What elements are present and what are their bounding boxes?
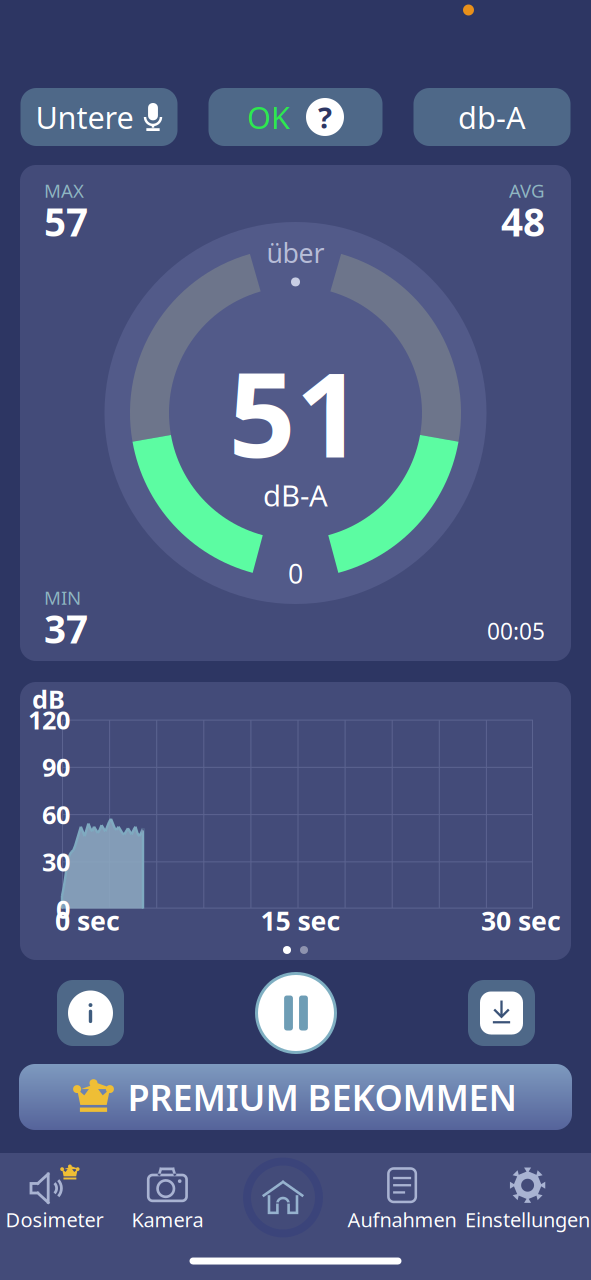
staticText: Kamera (131, 1206, 203, 1233)
button[interactable]: OK (208, 88, 382, 146)
staticText: 48 (501, 196, 545, 247)
button[interactable]: Aufnahmen (342, 1158, 462, 1236)
staticText: 90 (42, 750, 70, 784)
staticText: 60 (42, 797, 70, 831)
button[interactable]: Info (57, 980, 124, 1046)
staticText: 51 (228, 334, 362, 490)
staticText: db-A (458, 97, 526, 137)
staticText: MIN (44, 585, 81, 610)
staticText: 37 (44, 603, 88, 654)
staticText: dB-A (263, 475, 328, 514)
button[interactable]: Pause (254, 971, 338, 1055)
staticText: ? (318, 97, 332, 136)
button[interactable]: Untere (20, 88, 177, 146)
staticText: MAX (44, 178, 84, 203)
staticText: dB (32, 682, 65, 716)
button[interactable]: Einstellungen (462, 1158, 591, 1236)
staticText: 30 (42, 845, 70, 878)
staticText: 0 sec (55, 903, 120, 938)
button[interactable]: Kamera (111, 1158, 224, 1236)
staticText: 0 (56, 892, 70, 926)
staticText: 0 (288, 556, 303, 591)
staticText: 15 sec (260, 903, 340, 938)
button[interactable]: Dosimeter (0, 1158, 111, 1236)
staticText: 00:05 (487, 616, 545, 646)
staticText: Einstellungen (465, 1206, 590, 1233)
staticText: 30 sec (481, 903, 561, 938)
button[interactable]: db-A (413, 88, 570, 146)
button[interactable]: Aufnahme speichern (468, 980, 535, 1046)
staticText: AVG (509, 178, 545, 203)
staticText: PREMIUM BEKOMMEN (127, 1073, 517, 1121)
staticText: 57 (44, 196, 88, 247)
staticText: OK (247, 97, 290, 137)
staticText: 120 (28, 703, 70, 736)
staticText: über (266, 235, 324, 270)
staticText: Dosimeter (5, 1206, 103, 1233)
staticText: Aufnahmen (348, 1206, 457, 1233)
button[interactable]: PREMIUM BEKOMMEN (19, 1064, 572, 1130)
staticText: Untere (35, 97, 133, 137)
button[interactable]: Start (224, 1158, 342, 1236)
